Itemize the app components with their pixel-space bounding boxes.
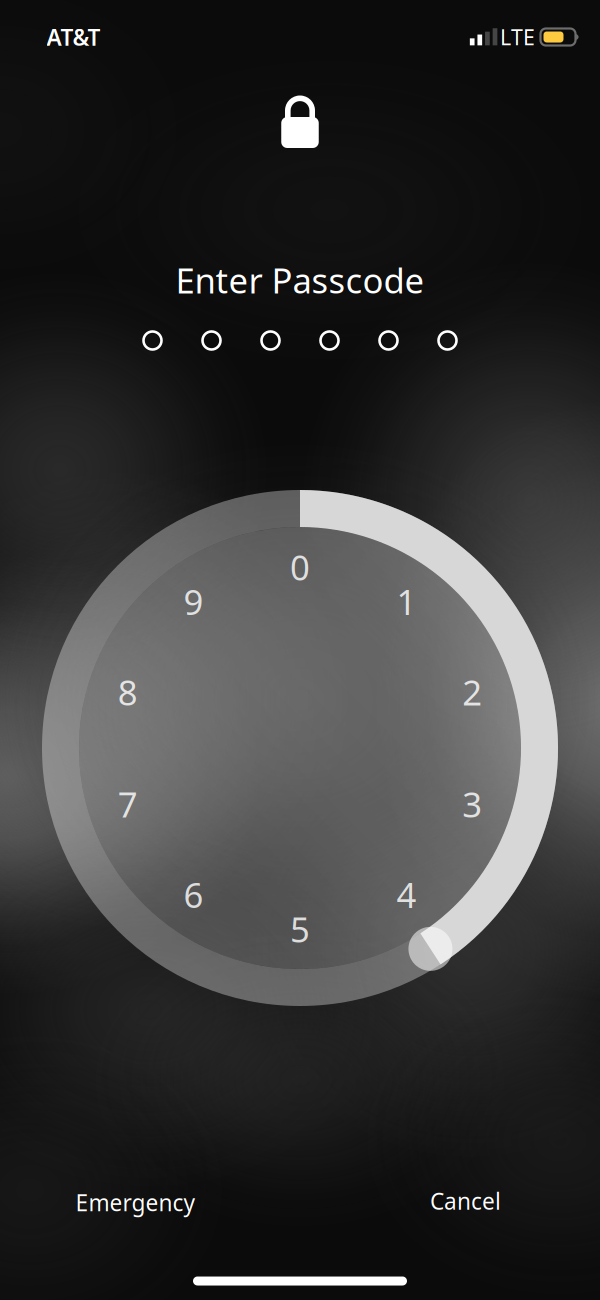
staticText: 8 xyxy=(118,669,138,715)
staticText: Enter Passcode xyxy=(175,257,424,303)
staticText: 0 xyxy=(290,544,310,590)
staticText: 9 xyxy=(184,578,204,624)
staticText: 6 xyxy=(184,871,204,917)
staticText: 5 xyxy=(290,906,310,952)
staticText: Cancel xyxy=(430,1186,501,1216)
button[interactable]: Emergency xyxy=(57,1175,213,1229)
button[interactable]: Cancel xyxy=(412,1174,519,1228)
staticText: LTE xyxy=(500,23,535,51)
staticText: 7 xyxy=(118,781,138,827)
staticText: 2 xyxy=(462,669,482,715)
staticText: Emergency xyxy=(75,1187,195,1217)
staticText: 4 xyxy=(396,871,416,917)
staticText: AT&T xyxy=(46,22,100,52)
staticText: 3 xyxy=(462,781,482,827)
staticText: 1 xyxy=(396,578,416,624)
